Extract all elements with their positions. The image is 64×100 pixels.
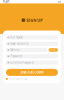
button[interactable]: Send OTP [49,48,58,52]
button[interactable]: CREATE ACCOUNT [6,69,58,76]
staticText: 9:41 [3,0,10,3]
staticText: Mobile [10,48,20,52]
staticText: SIGN UP [26,17,42,23]
staticText: ▮▮▮ [58,1,61,2]
staticText: Confirm Password [10,61,34,64]
staticText: Already registered? Sign in [9,78,28,80]
staticText: Full Name [10,36,23,39]
staticText: Password [10,54,22,58]
staticText: CREATE ACCOUNT [19,71,44,74]
button[interactable]: Already registered? Sign in [6,78,58,80]
staticText: Send OTP [50,49,57,51]
staticText: Email Address [10,42,28,45]
